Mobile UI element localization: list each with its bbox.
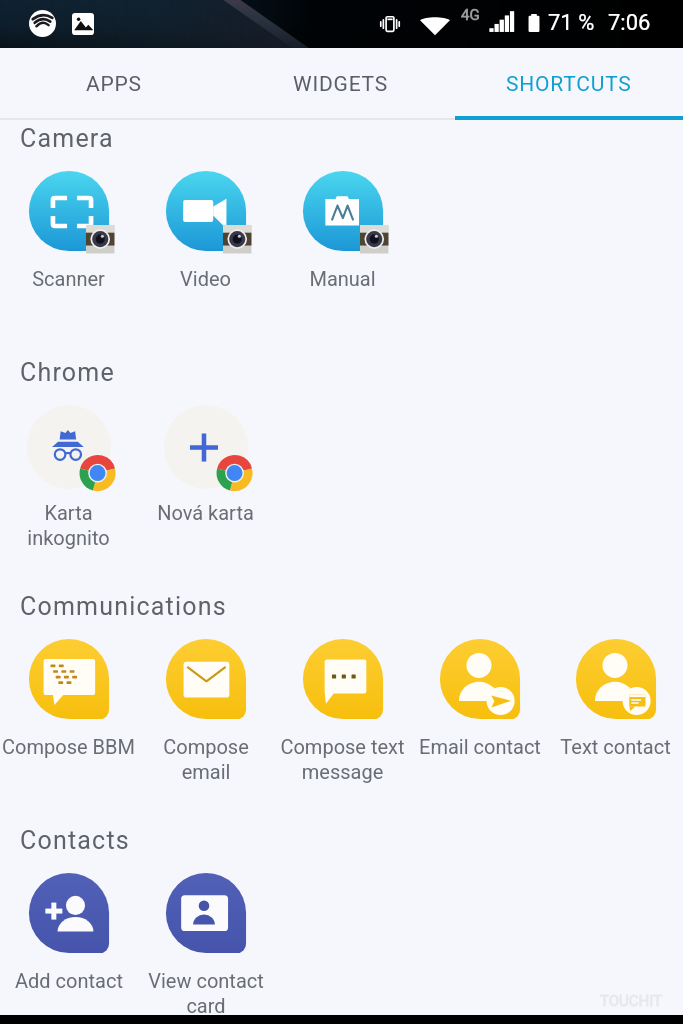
staticText: Compose text message: [280, 735, 405, 784]
staticText: Video: [180, 267, 231, 290]
button[interactable]: Add contact: [0, 865, 137, 992]
button[interactable]: Karta inkognito: [0, 397, 137, 550]
staticText: WIDGETS: [293, 72, 389, 97]
staticText: Email contact: [419, 735, 541, 758]
button[interactable]: Video: [137, 163, 274, 290]
other: Compose text message: [295, 631, 391, 727]
staticText: Add contact: [15, 969, 123, 992]
other: Email contact: [432, 631, 528, 727]
staticText: Karta inkognito: [27, 501, 110, 550]
staticText: Chrome: [20, 358, 115, 387]
other: View contact card: [158, 865, 254, 961]
button[interactable]: Text contact: [548, 631, 683, 758]
other: Nová karta: [158, 397, 254, 493]
other: Text contact: [568, 631, 664, 727]
staticText: Manual: [309, 267, 376, 290]
other: Compose BBM: [21, 631, 117, 727]
button[interactable]: SHORTCUTS: [455, 48, 683, 120]
staticText: Contacts: [20, 826, 130, 855]
staticText: View contact card: [148, 969, 264, 1018]
staticText: Communications: [20, 592, 227, 621]
button[interactable]: Manual: [274, 163, 411, 290]
staticText: Scanner: [32, 267, 105, 290]
staticText: 71 %: [548, 10, 595, 36]
button[interactable]: View contact card: [137, 865, 274, 1018]
button[interactable]: WIDGETS: [227, 48, 455, 120]
staticText: SHORTCUTS: [506, 72, 632, 97]
button[interactable]: Compose BBM: [0, 631, 137, 758]
other: Add contact: [21, 865, 117, 961]
button[interactable]: Nová karta: [137, 397, 274, 524]
staticText: 7:06: [608, 10, 651, 36]
staticText: Compose BBM: [2, 735, 135, 758]
staticText: Camera: [20, 124, 114, 153]
other: Karta inkognito: [21, 397, 117, 493]
other: Scanner: [21, 163, 117, 259]
button[interactable]: Email contact: [411, 631, 548, 758]
button[interactable]: APPS: [0, 48, 227, 120]
staticText: Text contact: [560, 735, 671, 758]
staticText: Nová karta: [157, 501, 254, 524]
other: Video: [158, 163, 254, 259]
staticText: Compose email: [163, 735, 249, 784]
staticText: APPS: [86, 72, 142, 97]
other: Compose email: [158, 631, 254, 727]
button[interactable]: Scanner: [0, 163, 137, 290]
other: Manual: [295, 163, 391, 259]
button[interactable]: Compose text message: [274, 631, 411, 784]
staticText: TOUCHIT: [600, 992, 663, 1010]
staticText: 4G: [461, 6, 480, 24]
button[interactable]: Compose email: [137, 631, 274, 784]
